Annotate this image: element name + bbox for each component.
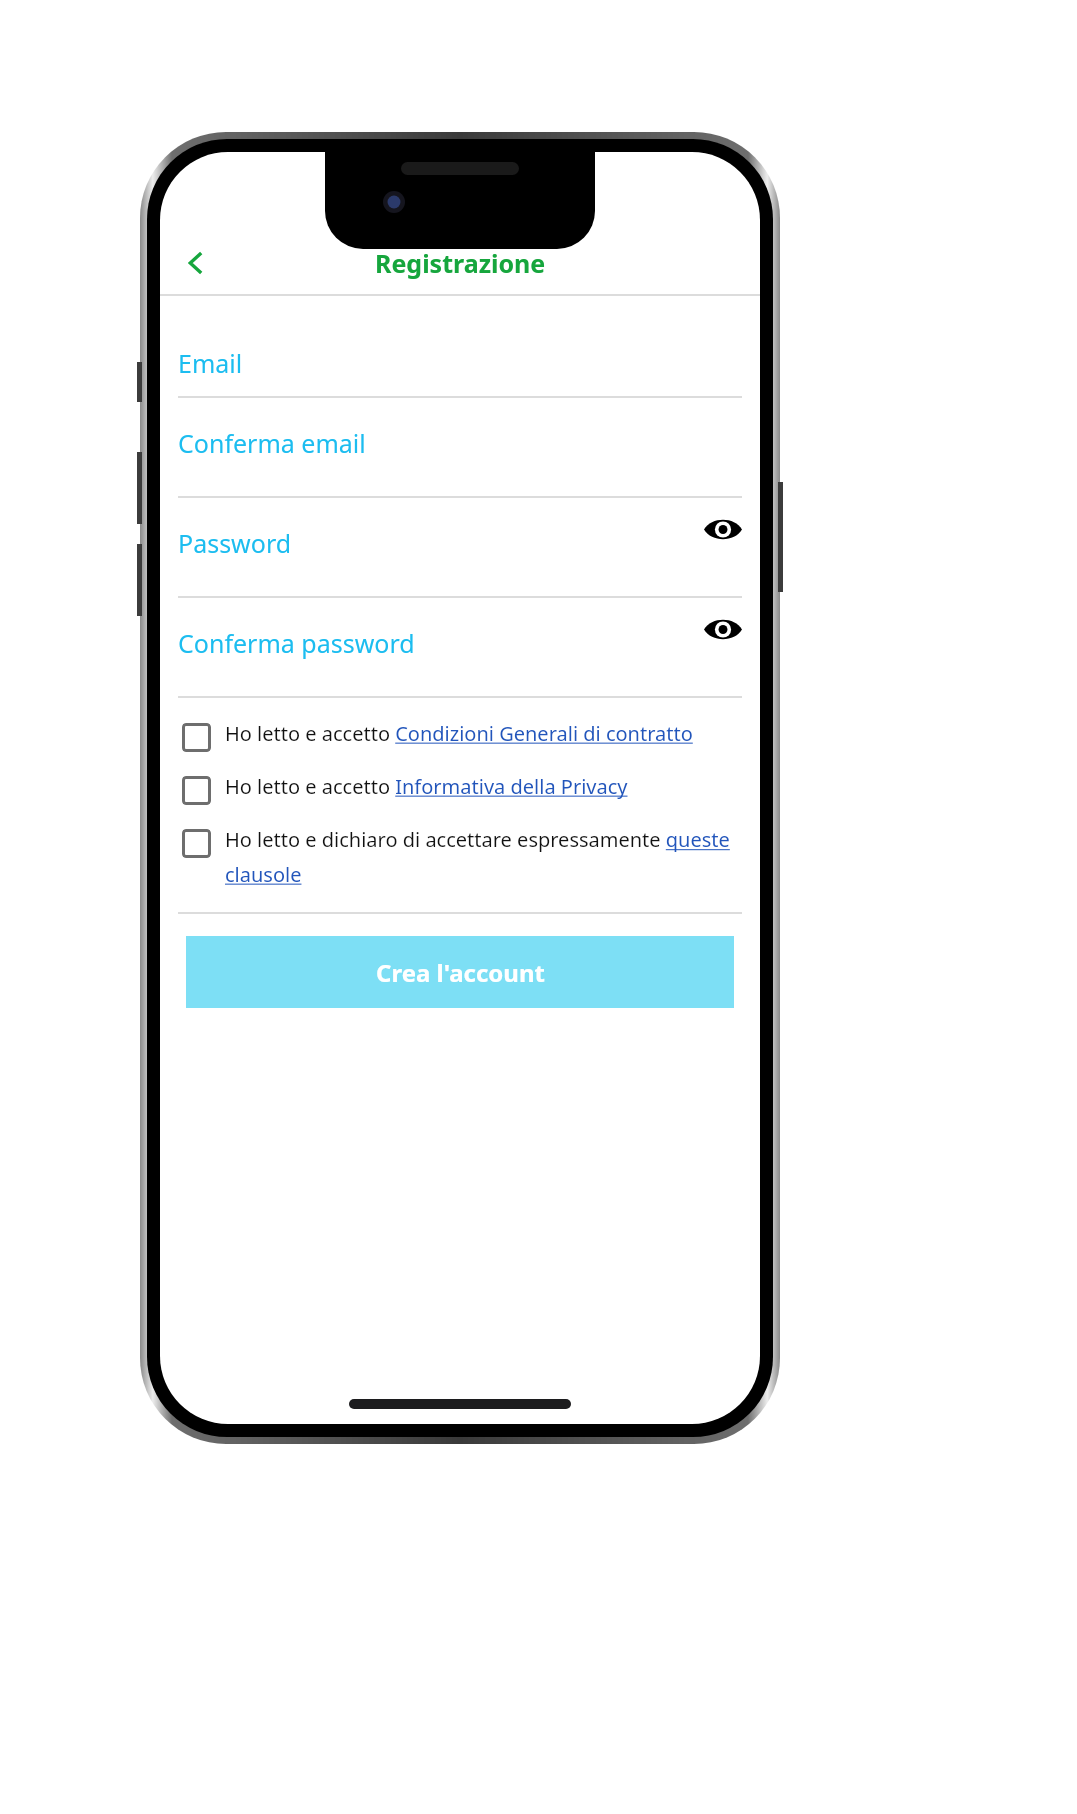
button[interactable]: Ho letto e accetto Condizioni Generali d…	[182, 720, 742, 749]
staticText: Conferma email	[178, 426, 366, 460]
button[interactable]: Mostra Password	[700, 506, 746, 552]
staticText: Registrazione	[375, 246, 546, 280]
staticText: Ho letto e dichiaro di accettare espress…	[225, 826, 742, 888]
staticText: Ho letto e accetto Informativa della Pri…	[225, 773, 628, 800]
button[interactable]: Mostra Conferma password	[160, 598, 760, 696]
staticText: Conferma password	[178, 626, 415, 660]
button[interactable]: Ho letto e dichiaro di accettare espress…	[182, 826, 742, 888]
button[interactable]: Back	[168, 235, 224, 291]
staticText: Crea l'account	[376, 956, 545, 989]
staticText: Password	[178, 526, 292, 560]
button[interactable]: Mostra Conferma password	[700, 606, 746, 652]
button[interactable]: Crea l'account	[186, 936, 734, 1008]
button[interactable]: Ho letto e accetto Informativa della Pri…	[182, 773, 742, 802]
staticText: Ho letto e accetto Condizioni Generali d…	[225, 720, 693, 747]
button[interactable]: Conferma email	[160, 398, 760, 496]
button[interactable]: Email	[160, 296, 760, 396]
staticText: Email	[178, 346, 243, 380]
button[interactable]: Mostra Password	[160, 498, 760, 596]
